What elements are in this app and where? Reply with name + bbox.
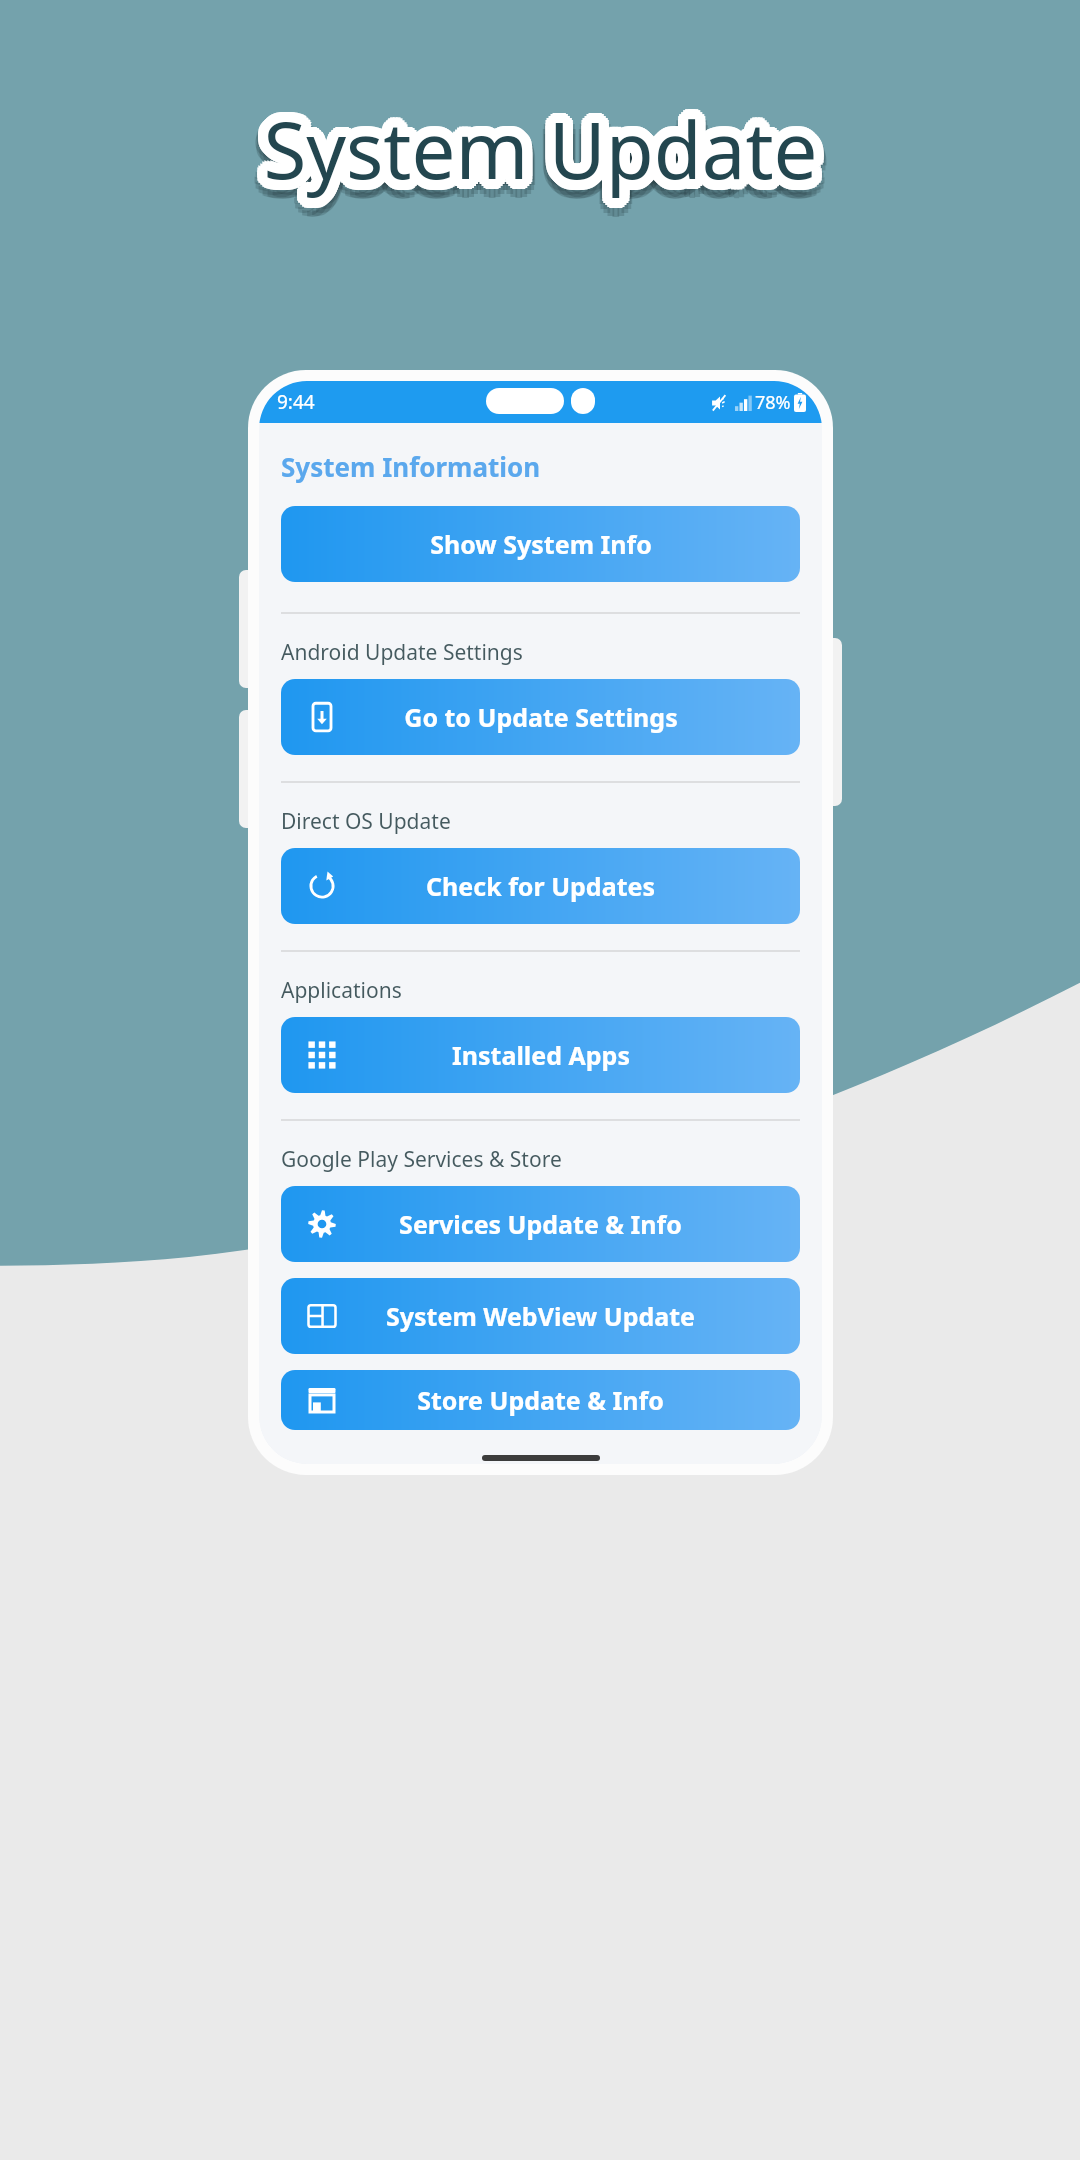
staticText: System Update <box>266 106 821 212</box>
button[interactable]: Store Update & Info <box>281 1370 800 1430</box>
staticText: System Update <box>254 101 809 207</box>
button[interactable]: System WebView Update <box>281 1278 800 1354</box>
staticText: System WebView Update <box>386 1299 695 1333</box>
staticText: System Update <box>263 86 818 192</box>
staticText: System Update <box>258 105 813 211</box>
staticText: Applications <box>281 976 402 1005</box>
staticText: System Update <box>251 97 806 203</box>
staticText: System Update <box>268 87 823 193</box>
staticText: Show System Info <box>430 527 652 561</box>
staticText: Android Update Settings <box>281 638 523 667</box>
staticText: System Update <box>263 106 818 212</box>
button[interactable]: Check for Updates <box>281 848 800 924</box>
staticText: System Update <box>272 101 827 207</box>
staticText: System Update <box>268 105 823 211</box>
staticText: System Update <box>276 102 831 208</box>
button[interactable]: Services Update & Info <box>281 1186 800 1262</box>
staticText: System Update <box>272 91 827 197</box>
staticText: System Update <box>258 87 813 193</box>
staticText: System Update <box>263 115 818 221</box>
staticText: System Update <box>260 86 815 192</box>
button[interactable]: Go to Update Settings <box>281 679 800 755</box>
staticText: 9:44 <box>277 389 315 415</box>
staticText: System Update <box>273 99 828 205</box>
staticText: System Update <box>253 96 808 202</box>
staticText: System Update <box>268 114 823 220</box>
staticText: 78% <box>755 390 791 415</box>
staticText: Google Play Services & Store <box>281 1145 562 1174</box>
staticText: System Information <box>281 449 541 484</box>
staticText: System Update <box>254 91 809 197</box>
staticText: System Update <box>253 93 808 199</box>
staticText: System Update <box>258 114 813 220</box>
staticText: System Update <box>253 99 808 205</box>
staticText: System Update <box>270 89 825 195</box>
staticText: System Update <box>254 111 809 217</box>
staticText: Check for Updates <box>426 869 655 903</box>
staticText: System Update <box>266 86 821 192</box>
staticText: System Update <box>260 106 815 212</box>
staticText: Store Update & Info <box>417 1383 664 1417</box>
staticText: System Update <box>256 103 811 209</box>
staticText: System Update <box>272 93 827 199</box>
staticText: System Update <box>251 107 806 213</box>
staticText: System Update <box>263 96 818 202</box>
staticText: Services Update & Info <box>399 1207 682 1241</box>
staticText: System Update <box>273 96 828 202</box>
staticText: System Update <box>275 107 830 213</box>
staticText: System Update <box>273 93 828 199</box>
staticText: System Update <box>270 103 825 209</box>
staticText: System Update <box>268 90 823 196</box>
staticText: System Update <box>254 93 809 199</box>
staticText: System Update <box>275 97 830 203</box>
staticText: System Update <box>263 89 818 195</box>
staticText: Direct OS Update <box>281 807 451 836</box>
staticText: System Update <box>250 102 805 208</box>
button[interactable]: Installed Apps <box>281 1017 800 1093</box>
button[interactable]: Show System Info <box>281 506 800 582</box>
staticText: System Update <box>256 89 811 195</box>
staticText: Installed Apps <box>452 1038 630 1072</box>
staticText: System Update <box>258 90 813 196</box>
staticText: Go to Update Settings <box>404 700 678 734</box>
staticText: System Update <box>272 111 827 217</box>
